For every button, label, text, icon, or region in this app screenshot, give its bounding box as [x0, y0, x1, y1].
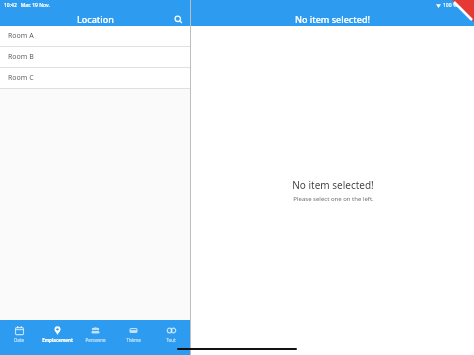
staticText: Personne [85, 337, 106, 343]
staticText: Date [14, 337, 24, 343]
staticText: Location [77, 13, 114, 25]
button[interactable]: Room A [0, 26, 190, 46]
staticText: Emplacement [42, 337, 73, 343]
staticText: Room C [8, 73, 34, 83]
staticText: Thème [126, 337, 141, 343]
button[interactable]: Room B [0, 47, 190, 67]
button[interactable]: Thème [114, 320, 152, 355]
button[interactable]: Room C [0, 68, 190, 88]
button[interactable]: Tout [152, 320, 190, 355]
button[interactable]: Emplacement [38, 320, 76, 355]
staticText: Room B [8, 52, 34, 62]
staticText: No item selected! [295, 13, 370, 25]
staticText: 10:42 Mar. 19 Nov. [4, 2, 50, 9]
staticText: No item selected! [292, 178, 374, 192]
staticText: Room A [8, 31, 34, 41]
staticText: 100 % [443, 2, 458, 9]
button[interactable]: Personne [76, 320, 114, 355]
staticText: Please select one on the left. [293, 195, 374, 203]
staticText: Tout [166, 337, 176, 343]
button[interactable]: Date [0, 320, 38, 355]
button[interactable]: Search [172, 13, 184, 25]
